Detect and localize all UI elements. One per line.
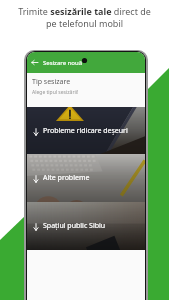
staticText: Alege tipul sesizării! — [32, 89, 79, 96]
staticText: Tip sesizare — [32, 77, 71, 87]
staticText: Trimite sesizările tale direct de pe tel… — [12, 5, 157, 30]
button[interactable]: Alte probleme — [27, 154, 145, 202]
staticText: Probleme ridicare deșeuri — [43, 126, 128, 136]
button[interactable]: Spațiul public Sibiu — [27, 202, 145, 250]
staticText: Alte probleme — [43, 173, 90, 183]
staticText: Spațiul public Sibiu — [43, 221, 106, 231]
button[interactable]: Back — [29, 57, 40, 68]
staticText: Sesizare nouă — [43, 59, 83, 67]
button[interactable]: Back — [27, 52, 145, 73]
button[interactable]: Probleme ridicare deșeuri — [27, 107, 145, 154]
